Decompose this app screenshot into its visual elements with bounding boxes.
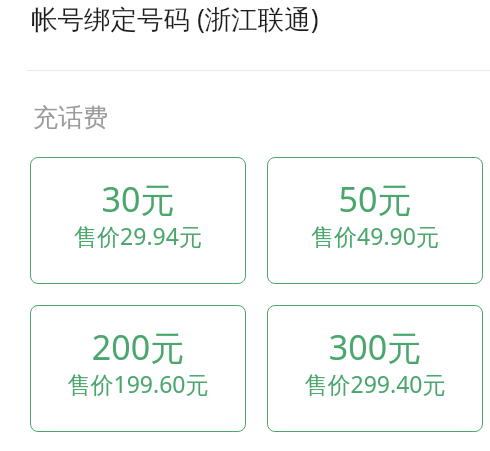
staticText: 售价299.40元 xyxy=(267,368,483,399)
button[interactable]: 300元 xyxy=(267,305,483,432)
staticText: 售价49.90元 xyxy=(267,220,483,251)
staticText: 售价199.60元 xyxy=(30,368,246,399)
button[interactable]: 30元 xyxy=(30,157,246,284)
button[interactable]: 50元 xyxy=(267,157,483,284)
staticText: 300元 xyxy=(267,324,483,370)
staticText: 50元 xyxy=(267,176,483,222)
staticText: 售价29.94元 xyxy=(30,220,246,251)
staticText: 充话费 xyxy=(33,102,108,133)
staticText: 200元 xyxy=(30,324,246,370)
staticText: 30元 xyxy=(30,176,246,222)
button[interactable]: 200元 xyxy=(30,305,246,432)
staticText: 帐号绑定号码 (浙江联通) xyxy=(31,1,319,37)
